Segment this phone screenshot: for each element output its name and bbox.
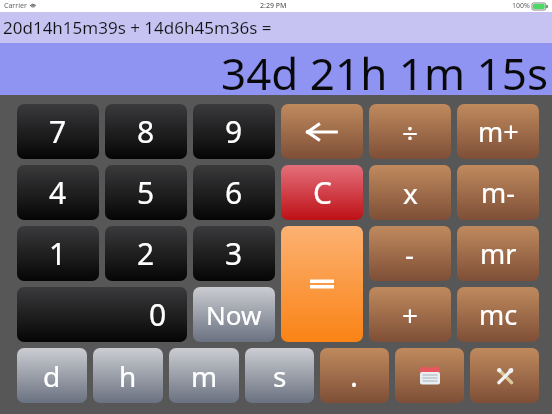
button[interactable]: m+ [457,104,539,159]
button[interactable]: Backspace [281,104,363,159]
staticText: d [43,357,61,395]
staticText: + [402,296,419,334]
staticText: 5 [137,172,155,213]
staticText: m- [481,174,515,211]
staticText: Now [206,297,262,332]
button[interactable]: m- [457,165,539,220]
staticText: 2 [137,233,155,274]
button[interactable]: Now [193,287,275,342]
staticText: mr [480,235,517,272]
button[interactable]: ÷ [369,104,451,159]
button[interactable]: d [17,348,87,403]
button[interactable]: 5 [105,165,187,220]
button[interactable]: 6 [193,165,275,220]
button[interactable]: 0 [17,287,187,342]
staticText: 1 [49,233,67,274]
staticText: 9 [225,111,243,152]
button[interactable]: . [320,348,389,403]
button[interactable]: 9 [193,104,275,159]
button[interactable]: C [281,165,363,220]
button[interactable]: m [169,348,239,403]
staticText: 7 [49,111,67,152]
staticText: x [403,174,418,212]
button[interactable]: 1 [17,226,99,281]
staticText: s [273,357,287,395]
button[interactable]: s [245,348,314,403]
staticText: 2:29 PM [260,1,287,11]
staticText: 3 [225,233,243,274]
button[interactable]: + [369,287,451,342]
button[interactable]: h [93,348,163,403]
staticText: 0 [149,294,167,335]
button[interactable]: Equals [281,226,363,342]
staticText: 34d 21h 1m 15s [221,43,548,95]
staticText: Carrier [4,1,27,11]
button[interactable]: mr [457,226,539,281]
button[interactable]: 3 [193,226,275,281]
staticText: 8 [137,111,155,152]
staticText: mc [479,296,518,333]
staticText: h [119,357,137,395]
staticText: 20d14h15m39s + 14d6h45m36s = [3,16,272,39]
staticText: ÷ [402,113,419,151]
button[interactable]: Settings [470,348,539,403]
button[interactable]: - [369,226,451,281]
button[interactable]: 4 [17,165,99,220]
button[interactable]: Date picker [395,348,464,403]
staticText: 6 [225,172,243,213]
button[interactable]: 8 [105,104,187,159]
staticText: 4 [49,172,67,213]
staticText: . [350,355,359,396]
staticText: m+ [478,113,519,150]
button[interactable]: x [369,165,451,220]
staticText: 100% [512,1,530,11]
staticText: C [313,172,332,213]
button[interactable]: mc [457,287,539,342]
button[interactable]: 7 [17,104,99,159]
staticText: m [191,357,218,395]
button[interactable]: 2 [105,226,187,281]
staticText: - [405,235,415,273]
